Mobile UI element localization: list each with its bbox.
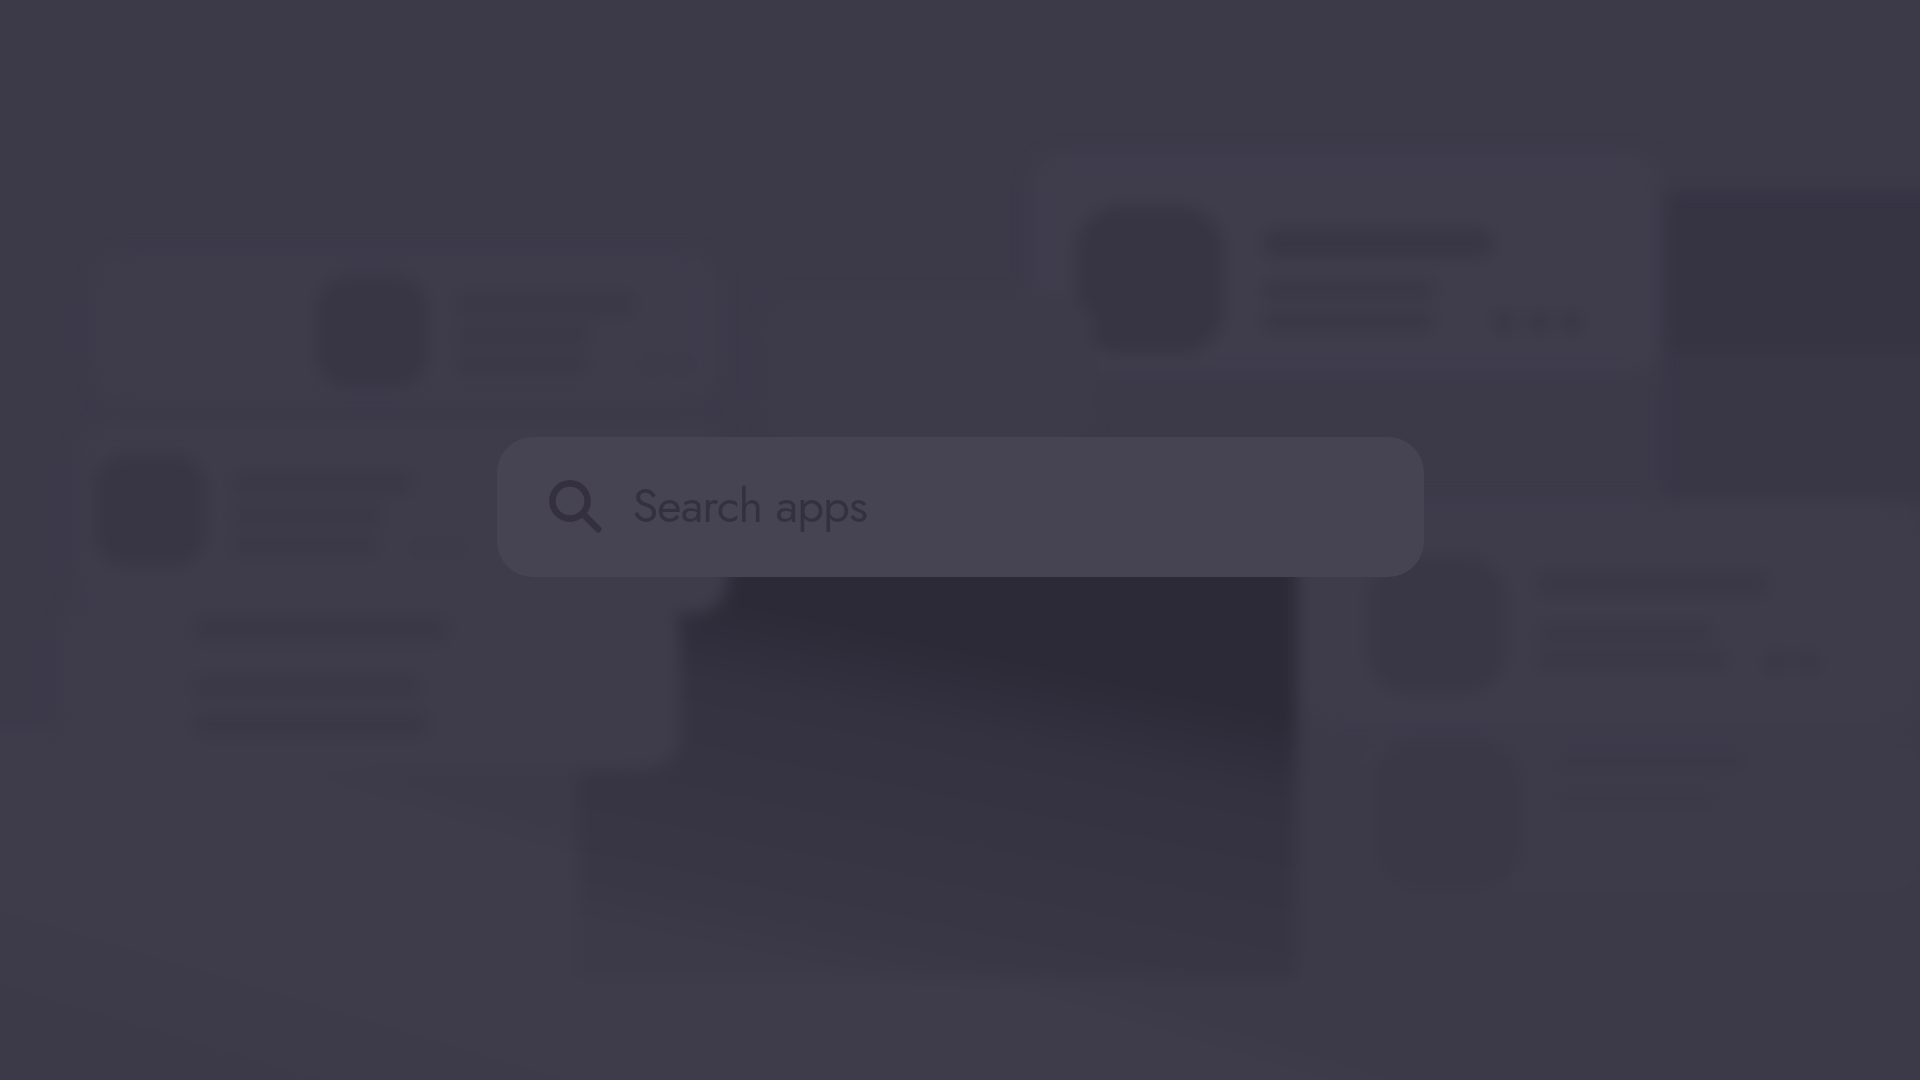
button[interactable]: Search apps	[497, 437, 1424, 577]
